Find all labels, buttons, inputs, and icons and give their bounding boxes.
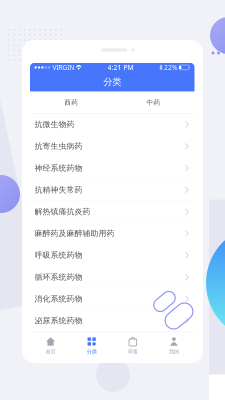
staticText: 4:21 PM <box>107 63 133 72</box>
button[interactable]: 首页 <box>30 332 71 359</box>
button[interactable]: 抗寄生虫病药 <box>30 136 194 157</box>
staticText: 分类 <box>103 76 121 88</box>
staticText: 消化系统药物 <box>34 294 82 304</box>
staticText: 泌尿系统药物 <box>34 316 82 326</box>
button[interactable]: 中药 <box>112 92 194 113</box>
staticText: 麻醉药及麻醉辅助用药 <box>34 228 114 238</box>
button[interactable]: 抗微生物药 <box>30 114 194 136</box>
staticText: 抗寄生虫病药 <box>34 141 82 151</box>
button[interactable]: 解热镇痛抗炎药 <box>30 201 194 223</box>
button[interactable]: 神经系统药物 <box>30 157 194 179</box>
staticText: 我的 <box>169 348 179 355</box>
button[interactable]: 抗精神失常药 <box>30 179 194 201</box>
staticText: 呼吸系统药物 <box>34 250 82 260</box>
staticText: 审查 <box>128 348 138 355</box>
staticText: 解热镇痛抗炎药 <box>34 207 90 217</box>
button[interactable]: 泌尿系统药物 <box>30 310 194 332</box>
staticText: 神经系统药物 <box>34 163 82 173</box>
button[interactable]: 呼吸系统药物 <box>30 245 194 266</box>
staticText: 循环系统药物 <box>34 272 82 282</box>
staticText: 分类 <box>87 348 97 355</box>
staticText: 首页 <box>46 348 56 355</box>
button[interactable]: 西药 <box>30 92 112 113</box>
button[interactable]: 分类 <box>71 332 112 359</box>
staticText: 22% <box>164 63 178 72</box>
button[interactable]: 循环系统药物 <box>30 266 194 288</box>
button[interactable]: 审查 <box>112 332 153 359</box>
staticText: 中药 <box>146 98 160 107</box>
staticText: 西药 <box>64 98 78 107</box>
button[interactable]: 消化系统药物 <box>30 288 194 310</box>
staticText: 抗精神失常药 <box>34 185 82 195</box>
button[interactable]: 麻醉药及麻醉辅助用药 <box>30 223 194 245</box>
staticText: 抗微生物药 <box>34 119 74 129</box>
staticText: VIRGIN <box>50 63 74 72</box>
button[interactable]: 我的 <box>153 332 194 359</box>
